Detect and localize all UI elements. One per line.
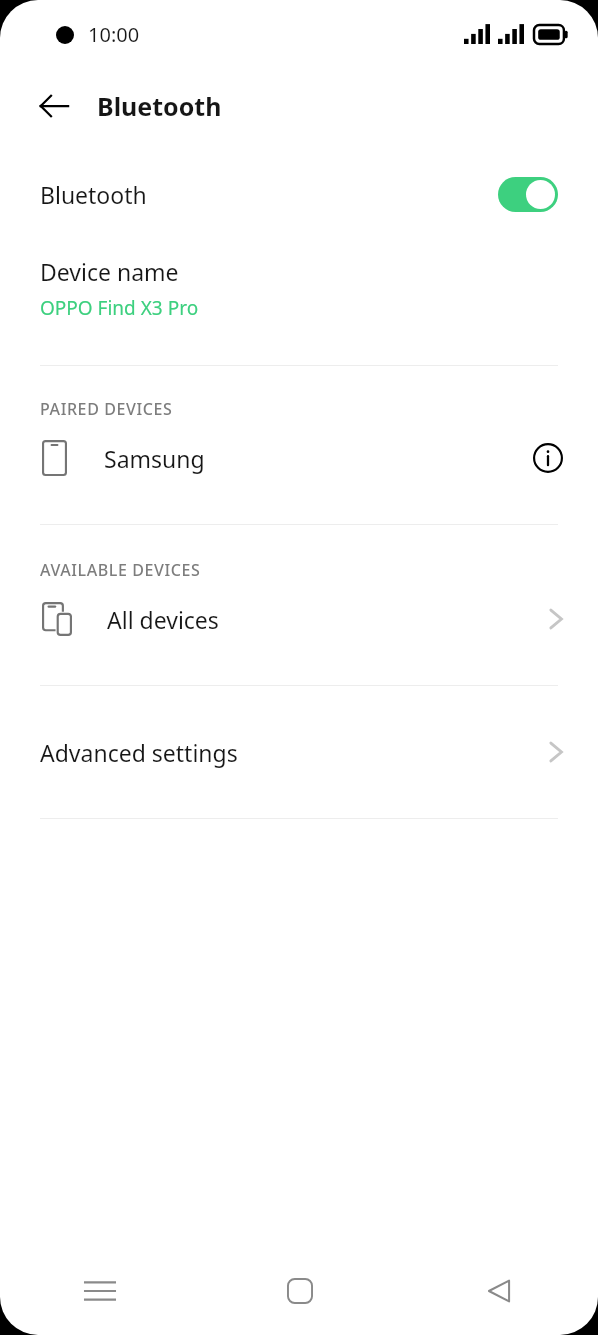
button[interactable]: Bluetooth on [498,177,558,212]
button[interactable]: Home [200,1247,399,1335]
button[interactable]: Device name [0,244,598,339]
staticText: AVAILABLE DEVICES [40,559,201,581]
staticText: Samsung [104,443,205,474]
staticText: Device name [40,256,179,287]
staticText: PAIRED DEVICES [40,398,173,420]
button[interactable]: Device info [524,434,572,482]
staticText: 10:00 [88,21,140,48]
button[interactable]: All devices [0,581,598,657]
button[interactable]: Back [399,1247,598,1335]
staticText: All devices [107,604,219,635]
button[interactable]: Advanced settings [0,686,598,818]
staticText: Bluetooth [40,179,147,210]
button[interactable]: Recent apps [0,1247,200,1335]
staticText: OPPO Find X3 Pro [40,295,199,321]
staticText: Bluetooth [97,89,222,123]
button[interactable]: Bluetooth [0,144,598,244]
staticText: Advanced settings [40,737,238,768]
button[interactable]: Back [26,78,82,134]
button[interactable]: Samsung [0,420,598,496]
